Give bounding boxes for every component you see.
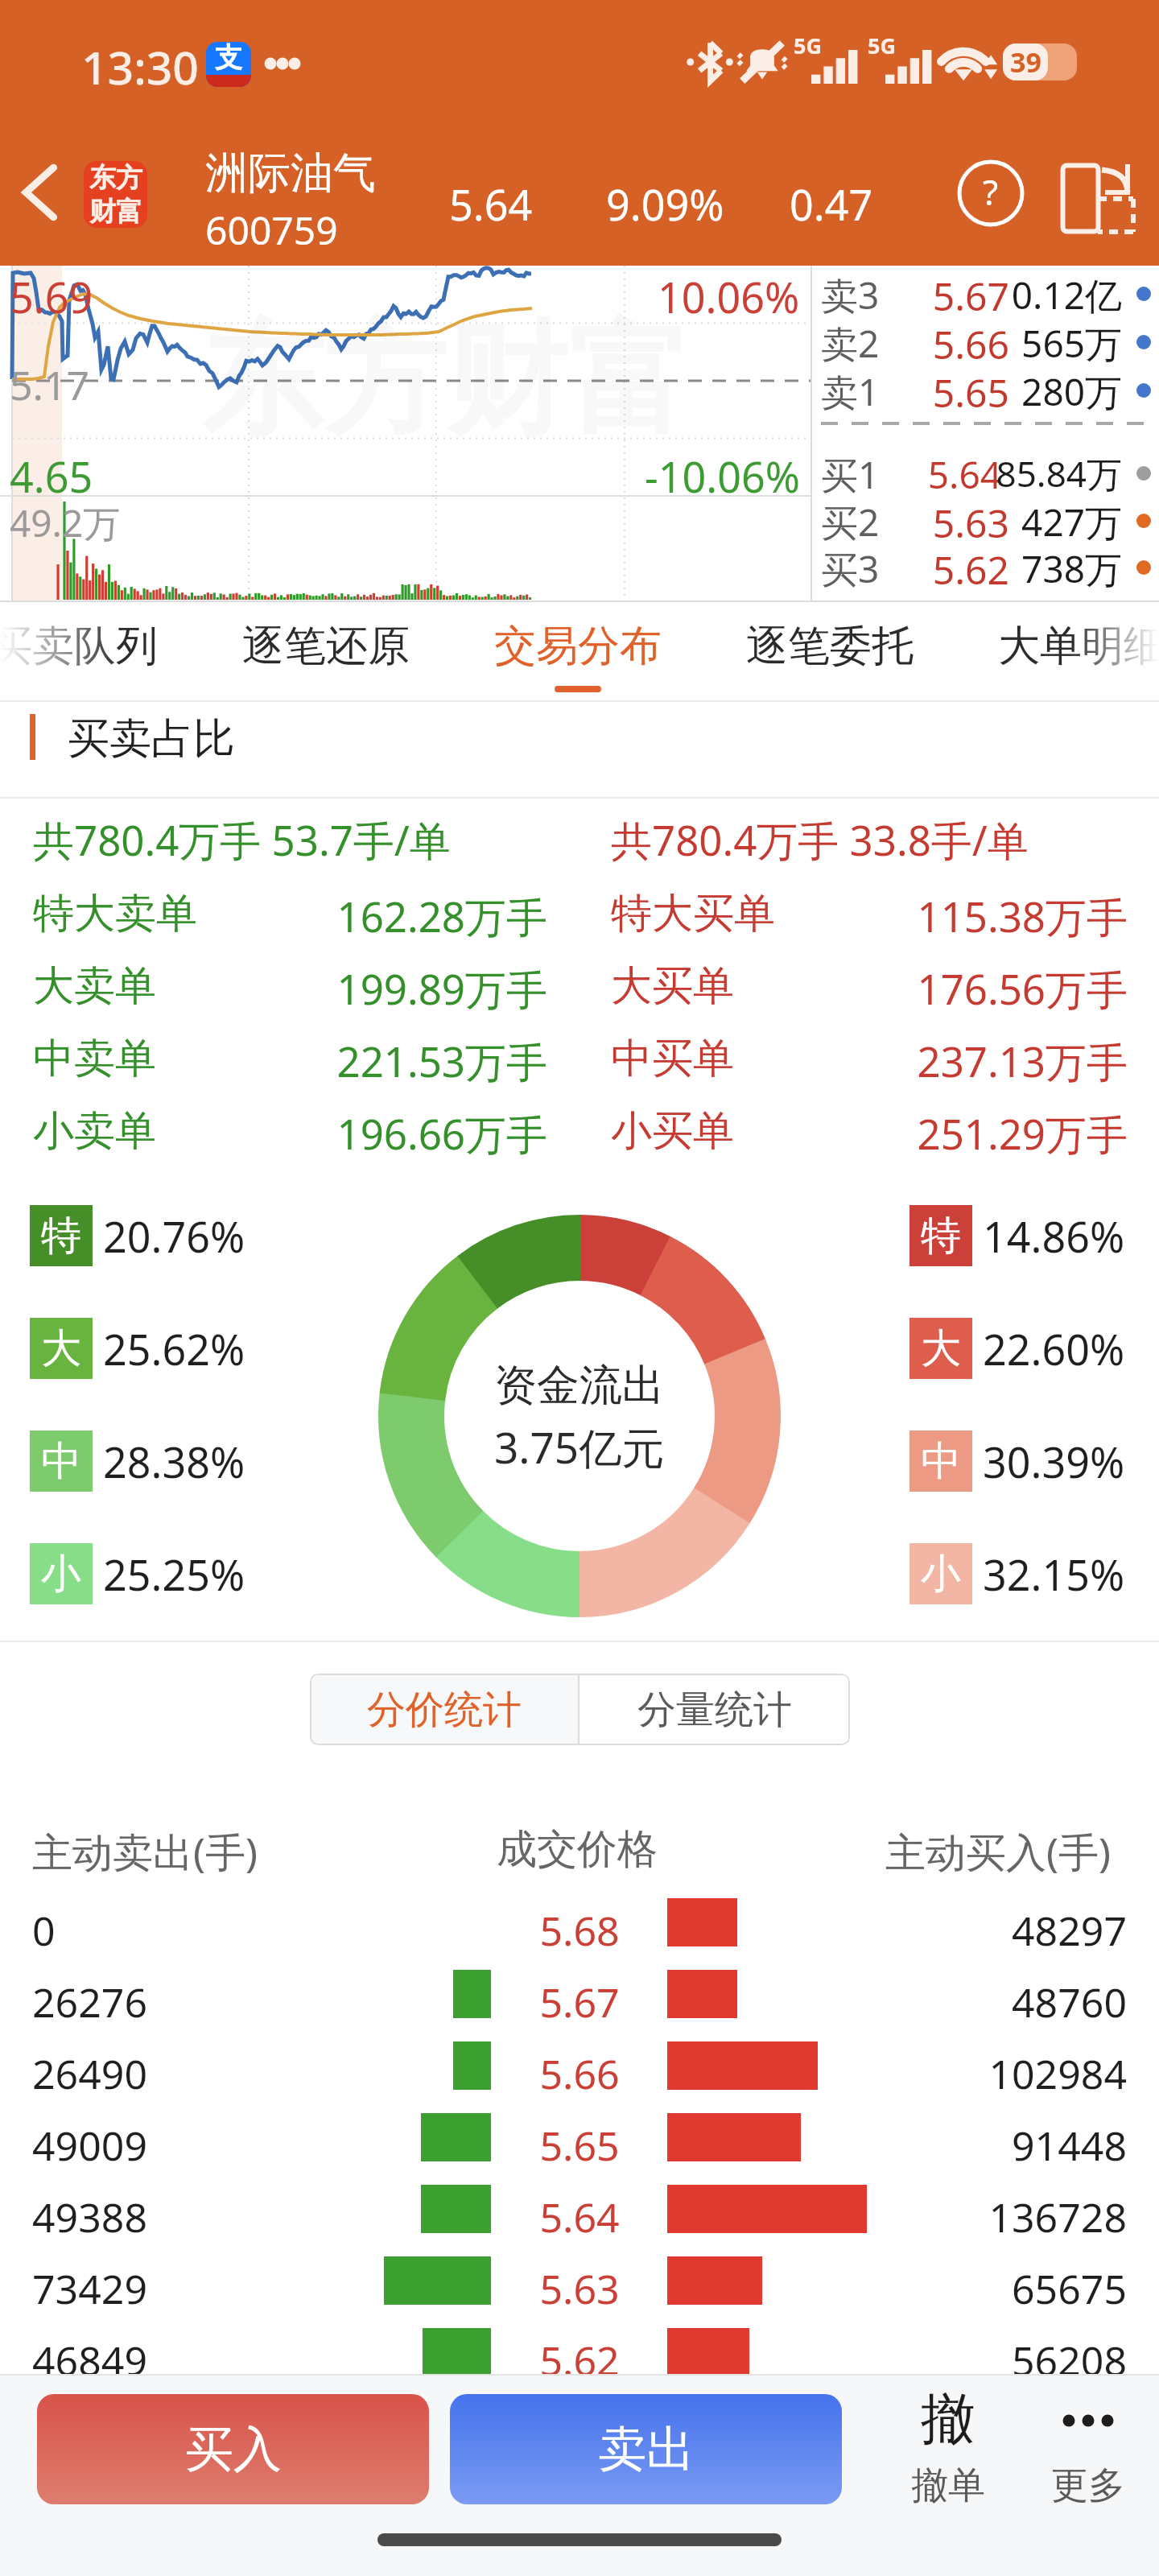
staticText: 更多: [1051, 2462, 1125, 2509]
staticText: 48297: [805, 1903, 1127, 1958]
staticText: 大单明细: [998, 620, 1159, 673]
staticText: 9.09%: [606, 175, 724, 233]
staticText: 46849: [32, 2333, 147, 2388]
staticText: 49.2万: [10, 497, 121, 548]
staticText: 大卖单: [33, 960, 156, 1012]
staticText: 特: [921, 1211, 961, 1261]
staticText: 财富: [89, 195, 142, 228]
staticText: 0.12亿: [929, 270, 1122, 318]
staticText: 4.65: [10, 448, 93, 505]
staticText: 特大买单: [611, 888, 775, 939]
staticText: 5.62: [864, 543, 1009, 592]
staticText: 39: [1010, 43, 1041, 80]
button[interactable]: 分量统计: [579, 1674, 850, 1745]
button[interactable]: More: [1024, 2376, 1153, 2517]
staticText: 20.76%: [103, 1207, 245, 1265]
staticText: 小: [41, 1549, 81, 1600]
staticText: 小: [921, 1549, 961, 1600]
staticText: 13:30: [81, 35, 199, 98]
staticText: 主动卖出(手): [32, 1824, 258, 1879]
staticText: 91448: [805, 2118, 1127, 2173]
staticText: 中卖单: [33, 1033, 156, 1084]
staticText: 卖3: [821, 270, 880, 318]
button[interactable]: Help: [941, 159, 1041, 227]
staticText: 撤单: [911, 2462, 985, 2509]
staticText: 196.66万手: [336, 1105, 547, 1162]
staticText: 251.29万手: [917, 1105, 1128, 1162]
staticText: 10.06%: [658, 268, 800, 325]
staticText: 25.25%: [103, 1546, 245, 1603]
staticText: 5.63: [864, 497, 1009, 545]
staticText: 大: [41, 1323, 81, 1374]
staticText: 5.66: [522, 2046, 637, 2101]
staticText: 73429: [32, 2261, 147, 2316]
staticText: 资金流出: [494, 1359, 665, 1413]
button[interactable]: 大单明细: [956, 602, 1159, 702]
staticText: 大买单: [611, 960, 734, 1012]
staticText: 共780.4万手 33.8手/单: [611, 811, 1029, 868]
staticText: 东方: [89, 161, 142, 195]
staticText: 26276: [32, 1975, 147, 2029]
button[interactable]: 买入: [37, 2394, 429, 2504]
staticText: 5.67: [864, 270, 1009, 318]
staticText: 中买单: [611, 1033, 734, 1084]
staticText: 237.13万手: [917, 1033, 1128, 1089]
staticText: 撤: [921, 2385, 975, 2454]
staticText: 分量统计: [637, 1686, 792, 1734]
button[interactable]: 买1: [811, 449, 1159, 497]
staticText: 交易分布: [494, 620, 662, 673]
button[interactable]: 卖3: [811, 270, 1159, 318]
staticText: 30.39%: [983, 1433, 1125, 1490]
staticText: 5.64: [522, 2190, 637, 2244]
staticText: 特大卖单: [33, 888, 197, 939]
staticText: 大: [921, 1323, 961, 1374]
staticText: 买3: [821, 543, 880, 592]
button[interactable]: 买3: [811, 543, 1159, 592]
staticText: 49388: [32, 2190, 147, 2244]
staticText: 共780.4万手 53.7手/单: [33, 811, 451, 868]
staticText: 49009: [32, 2118, 147, 2173]
staticText: 洲际油气: [205, 147, 376, 200]
staticText: 5.65: [864, 366, 1009, 415]
staticText: 427万: [929, 497, 1122, 545]
button[interactable]: 分价统计: [310, 1674, 578, 1745]
staticText: 28.38%: [103, 1433, 245, 1490]
staticText: 5.17: [10, 357, 90, 412]
button[interactable]: 买2: [811, 497, 1159, 545]
staticText: 162.28万手: [336, 888, 547, 944]
staticText: 48760: [805, 1975, 1127, 2029]
staticText: 176.56万手: [917, 960, 1128, 1017]
button[interactable]: 逐笔委托: [704, 602, 955, 702]
staticText: 逐笔还原: [242, 620, 410, 673]
staticText: 买卖队列: [0, 620, 158, 673]
staticText: 5.66: [864, 318, 1009, 366]
staticText: 小买单: [611, 1105, 734, 1157]
staticText: 卖出: [598, 2419, 695, 2480]
staticText: 0: [32, 1903, 56, 1958]
staticText: 中: [41, 1436, 81, 1487]
staticText: 0.47: [790, 175, 873, 233]
staticText: 5.63: [522, 2261, 637, 2316]
staticText: 32.15%: [983, 1546, 1125, 1603]
staticText: 565万: [929, 318, 1122, 366]
button[interactable]: 逐笔还原: [200, 602, 452, 702]
staticText: 卖1: [821, 366, 880, 415]
staticText: 逐笔委托: [746, 620, 914, 673]
staticText: 5.67: [522, 1975, 637, 2029]
staticText: 买入: [185, 2419, 282, 2480]
button[interactable]: Switch layout: [1051, 158, 1140, 238]
staticText: 5.62: [522, 2333, 637, 2388]
staticText: 主动买入(手): [885, 1824, 1111, 1879]
button[interactable]: 卖1: [811, 366, 1159, 415]
staticText: 东方财富: [201, 304, 691, 458]
staticText: 买1: [821, 449, 880, 497]
staticText: 卖2: [821, 318, 880, 366]
button[interactable]: 撤: [884, 2376, 1013, 2517]
button[interactable]: 交易分布: [452, 602, 703, 702]
button[interactable]: Back: [0, 119, 84, 266]
button[interactable]: 卖2: [811, 318, 1159, 366]
button[interactable]: 买卖队列: [0, 602, 200, 702]
staticText: 115.38万手: [917, 888, 1128, 944]
staticText: 85.84万: [929, 449, 1122, 497]
button[interactable]: 卖出: [450, 2394, 842, 2504]
